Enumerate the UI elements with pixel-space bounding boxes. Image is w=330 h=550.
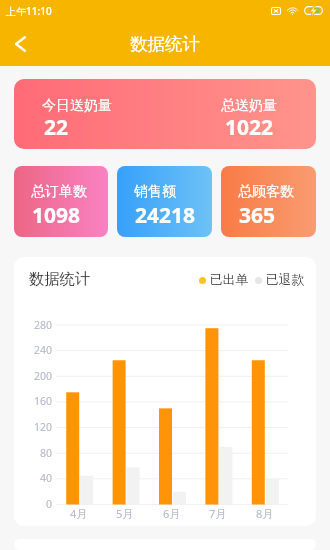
staticText: 1098 [32,201,81,230]
staticText: 120 [26,420,52,434]
staticText: 22 [44,113,69,142]
staticText: 6月 [163,506,181,521]
staticText: 数据统计 [29,269,91,288]
staticText: 数据统计 [130,33,200,55]
staticText: 总顾客数 [238,183,294,201]
staticText: 80 [26,446,52,460]
staticText: 200 [26,369,52,383]
staticText: 365 [239,201,276,230]
staticText: 0 [26,497,52,511]
staticText: 销售额 [134,183,176,201]
staticText: 总送奶量 [221,97,277,115]
staticText: 160 [26,394,52,408]
staticText: 240 [26,343,52,357]
button[interactable]: 销售额 [117,166,212,237]
staticText: 1022 [225,113,274,142]
button[interactable]: 总顾客数 [221,166,316,237]
staticText: 8月 [256,506,274,521]
staticText: 24218 [135,201,196,230]
staticText: 上午11:10 [6,4,52,18]
staticText: 4月 [70,506,88,521]
button[interactable]: Back [0,21,40,66]
staticText: 今日送奶量 [42,97,112,115]
staticText: 已出单 [210,272,249,288]
staticText: 总订单数 [31,183,87,201]
button[interactable]: 今日送奶量 [14,79,316,149]
staticText: 已退款 [266,272,305,288]
staticText: 40 [26,471,52,485]
staticText: 5月 [116,506,134,521]
staticText: 280 [26,318,52,332]
staticText: 7月 [209,506,227,521]
button[interactable]: 总订单数 [14,166,108,237]
